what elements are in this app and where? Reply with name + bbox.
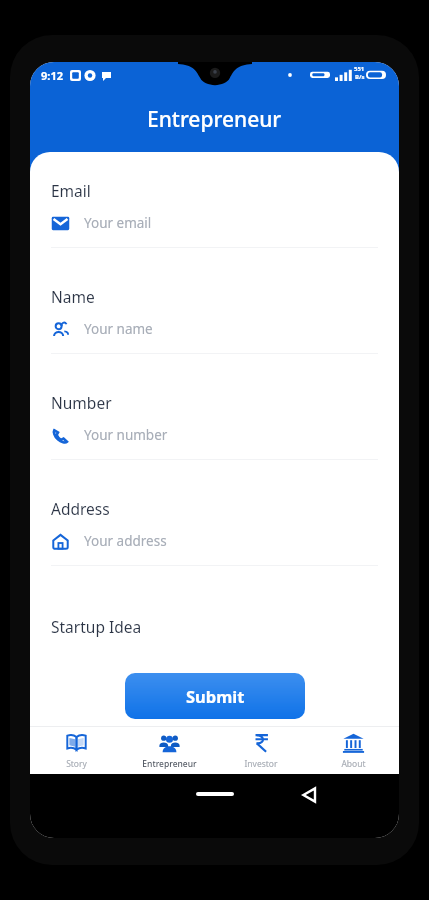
button[interactable]: Entrepreneur bbox=[123, 727, 215, 774]
staticText: 551 bbox=[354, 65, 365, 73]
staticText: Investor bbox=[244, 758, 278, 770]
staticText: Your name bbox=[84, 320, 153, 338]
button[interactable]: Back bbox=[299, 785, 319, 805]
button[interactable]: Submit bbox=[125, 673, 305, 719]
other: Home bbox=[196, 792, 234, 796]
staticText: Submit bbox=[186, 685, 245, 707]
staticText: Name bbox=[51, 286, 95, 307]
staticText: Entrepreneur bbox=[142, 758, 197, 770]
staticText: Your number bbox=[84, 426, 168, 444]
button[interactable]: About bbox=[307, 727, 399, 774]
staticText: Your address bbox=[84, 532, 167, 550]
staticText: Email bbox=[51, 180, 91, 201]
staticText: B/s bbox=[355, 73, 365, 81]
staticText: Your email bbox=[84, 214, 152, 232]
staticText: Entrepreneur bbox=[147, 105, 282, 134]
button[interactable]: Email bbox=[51, 180, 378, 286]
staticText: Story bbox=[66, 758, 87, 770]
staticText: 9:12 bbox=[41, 68, 63, 83]
button[interactable]: Address bbox=[51, 498, 378, 604]
staticText: About bbox=[341, 758, 366, 770]
staticText: Number bbox=[51, 392, 112, 413]
staticText: Address bbox=[51, 498, 110, 519]
button[interactable]: Number bbox=[51, 392, 378, 498]
staticText: Startup Idea bbox=[51, 616, 142, 637]
button[interactable]: Investor bbox=[215, 727, 307, 774]
button[interactable]: Name bbox=[51, 286, 378, 392]
button[interactable]: Story bbox=[30, 727, 123, 774]
